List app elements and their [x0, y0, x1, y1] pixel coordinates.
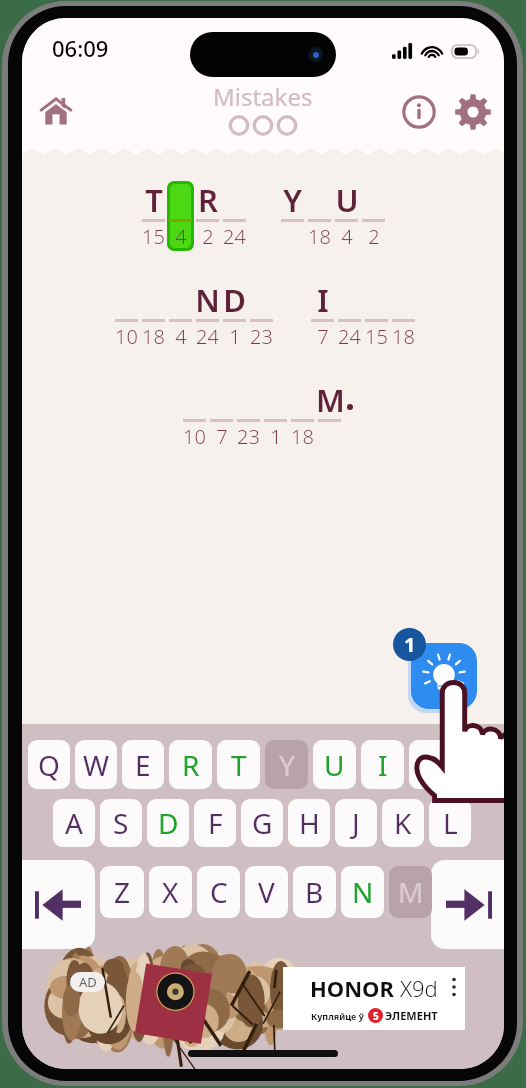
button[interactable]: Home: [28, 84, 84, 140]
button[interactable]: 15: [363, 283, 390, 353]
button[interactable]: M: [316, 383, 343, 453]
staticText: S: [113, 804, 129, 842]
staticText: L: [443, 804, 458, 842]
staticText: HONOR: [310, 973, 394, 1003]
button[interactable]: V: [245, 866, 288, 918]
button[interactable]: 24: [221, 183, 248, 253]
staticText: I: [317, 279, 329, 321]
staticText: Y: [283, 179, 302, 221]
button[interactable]: U: [313, 740, 356, 789]
staticText: X9d: [400, 973, 438, 1003]
button[interactable]: F: [194, 799, 236, 847]
staticText: Q: [38, 746, 60, 784]
button[interactable]: Z: [100, 866, 144, 918]
button[interactable]: 4: [167, 283, 194, 353]
staticText: 2: [202, 223, 214, 250]
button[interactable]: G: [241, 799, 283, 847]
staticText: 23: [250, 323, 273, 350]
button[interactable]: AD: [64, 967, 465, 1030]
button[interactable]: A: [53, 799, 95, 847]
button[interactable]: T: [140, 183, 167, 253]
button[interactable]: D: [147, 799, 189, 847]
button[interactable]: Previous word: [22, 860, 95, 949]
button[interactable]: K: [382, 799, 424, 847]
staticText: Z: [114, 873, 131, 911]
staticText: AD: [79, 973, 97, 991]
button[interactable]: E: [122, 740, 164, 789]
button[interactable]: Info: [392, 85, 446, 139]
staticText: ЭЛЕМЕНТ: [385, 1008, 438, 1023]
button[interactable]: 24: [336, 283, 363, 353]
staticText: W: [83, 746, 110, 784]
button[interactable]: Next word: [431, 860, 504, 949]
staticText: H: [299, 804, 320, 842]
button[interactable]: X: [149, 866, 192, 918]
button[interactable]: D: [221, 283, 248, 353]
button[interactable]: I: [309, 283, 336, 353]
staticText: R: [198, 179, 218, 221]
button[interactable]: N: [341, 866, 384, 918]
button[interactable]: R: [194, 183, 221, 253]
button[interactable]: I: [361, 740, 404, 789]
staticText: A: [65, 804, 83, 842]
staticText: Купляйце ў: [311, 1010, 364, 1022]
staticText: R: [182, 746, 200, 784]
staticText: 23: [237, 423, 260, 450]
staticText: J: [352, 804, 360, 842]
button[interactable]: J: [335, 799, 377, 847]
button[interactable]: H: [288, 799, 330, 847]
button[interactable]: 23: [235, 383, 262, 453]
staticText: U: [335, 179, 359, 221]
button[interactable]: C: [197, 866, 240, 918]
staticText: U: [324, 746, 345, 784]
button[interactable]: Settings: [446, 85, 500, 139]
button[interactable]: U: [333, 183, 360, 253]
staticText: 24: [338, 323, 361, 350]
staticText: 24: [223, 223, 246, 250]
button[interactable]: 18: [306, 183, 333, 253]
staticText: 4: [341, 223, 353, 250]
button[interactable]: 18: [140, 283, 167, 353]
button[interactable]: Hint: [411, 643, 477, 709]
button[interactable]: 1: [262, 383, 289, 453]
button[interactable]: 18: [289, 383, 316, 453]
staticText: 4: [175, 223, 187, 250]
staticText: 18: [291, 423, 314, 450]
button[interactable]: Q: [28, 740, 70, 789]
button[interactable]: R: [169, 740, 212, 789]
staticText: 10: [183, 423, 206, 450]
button[interactable]: 2: [360, 183, 387, 253]
button[interactable]: B: [293, 866, 336, 918]
button[interactable]: 10: [113, 283, 140, 353]
button[interactable]: W: [75, 740, 117, 789]
button[interactable]: 10: [181, 383, 208, 453]
staticText: M: [316, 379, 343, 421]
button[interactable]: Y: [279, 183, 306, 253]
staticText: 18: [308, 223, 331, 250]
button[interactable]: Y: [265, 740, 308, 789]
staticText: O: [420, 746, 442, 784]
staticText: 06:09: [52, 33, 109, 63]
button[interactable]: N: [194, 283, 221, 353]
staticText: E: [135, 746, 151, 784]
button[interactable]: M: [389, 866, 432, 918]
staticText: 1: [270, 423, 282, 450]
button[interactable]: 23: [248, 283, 275, 353]
staticText: C: [210, 873, 228, 911]
button[interactable]: 4: [167, 183, 194, 253]
staticText: X: [162, 873, 179, 911]
button[interactable]: S: [100, 799, 142, 847]
staticText: 2: [368, 223, 380, 250]
staticText: F: [208, 804, 223, 842]
button[interactable]: L: [429, 799, 471, 847]
staticText: I: [378, 746, 388, 784]
staticText: K: [394, 804, 412, 842]
staticText: 18: [392, 323, 415, 350]
button[interactable]: O: [409, 740, 452, 789]
staticText: V: [258, 873, 275, 911]
button[interactable]: 7: [208, 383, 235, 453]
button[interactable]: 18: [390, 283, 417, 353]
button[interactable]: T: [217, 740, 260, 789]
